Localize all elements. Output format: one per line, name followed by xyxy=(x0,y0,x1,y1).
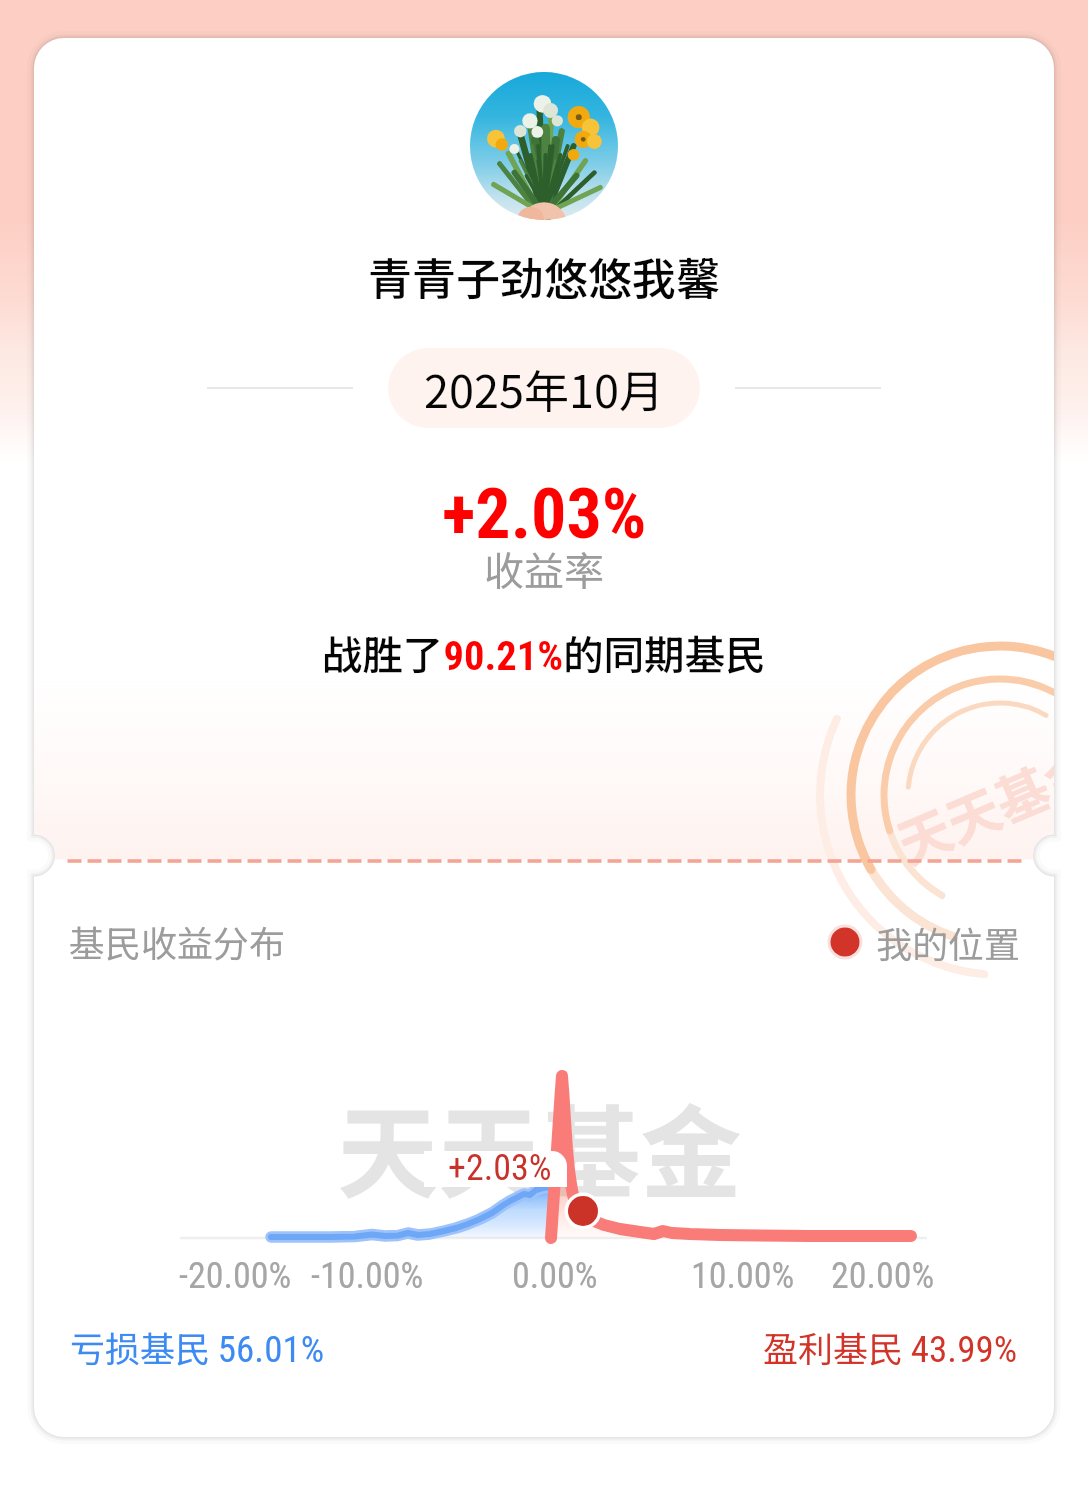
staticText: 盈利基民 43.99% xyxy=(763,1321,1018,1372)
staticText: 收益率 xyxy=(484,540,604,598)
staticText: +2.03% xyxy=(442,473,647,555)
staticText: 我的位置 xyxy=(876,916,1021,968)
button[interactable]: 2025年10月 xyxy=(388,348,700,428)
staticText: -10.00% xyxy=(311,1255,424,1297)
staticText: 亏损基民 56.01% xyxy=(70,1321,325,1372)
staticText: 青青子劲悠悠我馨 xyxy=(368,244,720,308)
staticText: 2025年10月 xyxy=(424,356,664,421)
staticText: 战胜了90.21%的同期基民 xyxy=(322,623,766,682)
staticText: -20.00% xyxy=(179,1255,292,1297)
staticText: 20.00% xyxy=(831,1255,935,1297)
staticText: 基民收益分布 xyxy=(69,915,286,967)
button[interactable]: 用户头像 xyxy=(463,65,625,227)
staticText: 0.00% xyxy=(512,1255,598,1297)
button[interactable]: 我的位置 xyxy=(826,916,1021,968)
staticText: 10.00% xyxy=(691,1255,795,1297)
